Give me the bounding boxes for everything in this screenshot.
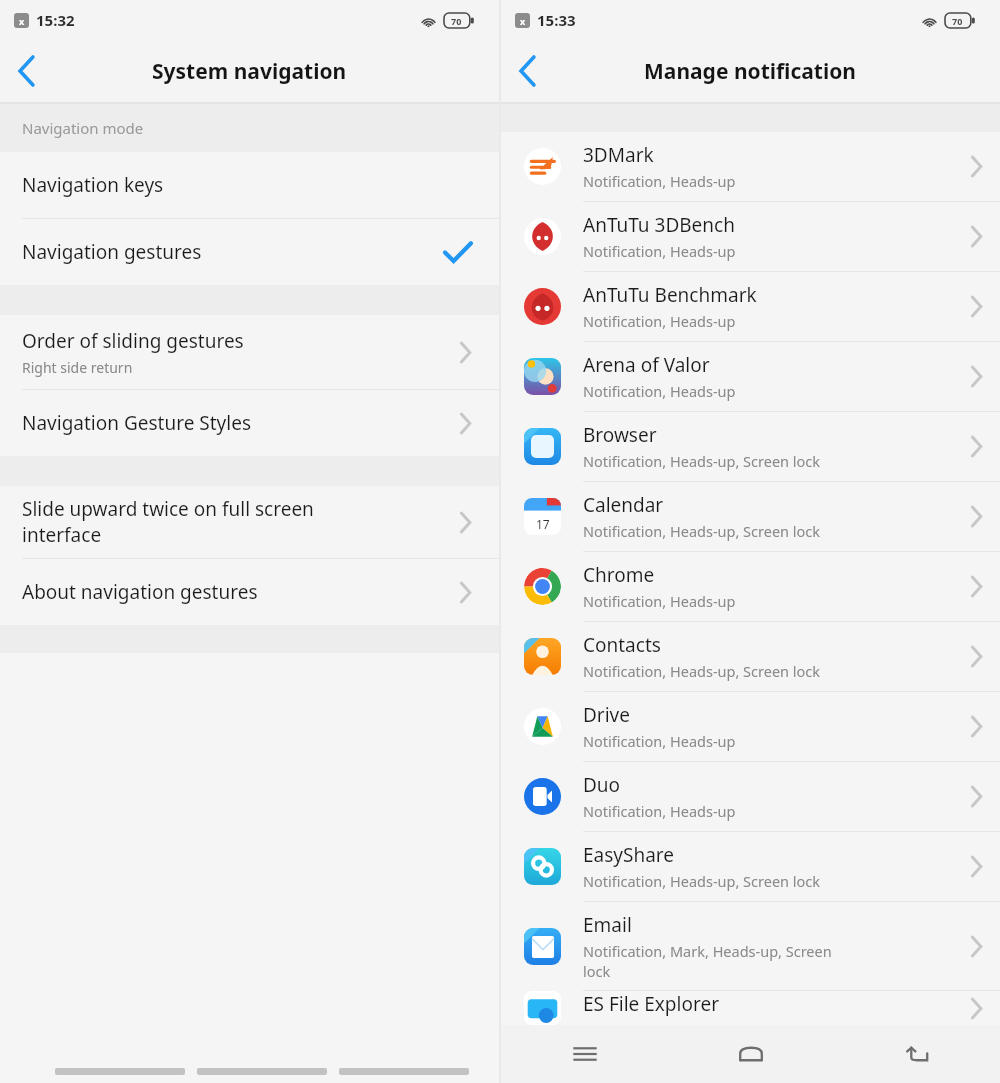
button[interactable]: ES File Explorer <box>501 991 1000 1025</box>
staticText: Notification, Mark, Heads-up, Screen loc… <box>583 941 832 981</box>
button[interactable]: Home <box>668 1025 834 1083</box>
staticText: Chrome <box>583 562 655 588</box>
staticText: Contacts <box>583 632 661 658</box>
button[interactable]: Drive <box>501 692 1000 762</box>
staticText: Navigation mode <box>22 118 144 138</box>
staticText: Notification, Heads-up <box>583 381 736 401</box>
staticText: System navigation <box>152 57 347 86</box>
button[interactable]: AnTuTu 3DBench <box>501 202 1000 272</box>
button[interactable]: Recents <box>501 1025 668 1083</box>
staticText: Notification, Heads-up, Screen lock <box>583 451 821 471</box>
staticText: Drive <box>583 702 630 728</box>
staticText: 3DMark <box>583 142 654 168</box>
staticText: 70 <box>451 15 462 27</box>
button[interactable]: Back <box>0 44 54 98</box>
staticText: Browser <box>583 422 657 448</box>
staticText: Notification, Heads-up, Screen lock <box>583 871 821 891</box>
button[interactable]: Arena of Valor <box>501 342 1000 412</box>
button[interactable]: Navigation Gesture Styles <box>0 390 499 456</box>
button[interactable]: 17 <box>501 482 1000 552</box>
staticText: Navigation keys <box>22 172 164 198</box>
staticText: Slide upward twice on full screen interf… <box>22 496 314 548</box>
staticText: 15:32 <box>36 10 75 30</box>
button[interactable]: Browser <box>501 412 1000 482</box>
staticText: x <box>520 15 526 27</box>
staticText: About navigation gestures <box>22 579 258 605</box>
button[interactable]: 3DMark <box>501 132 1000 202</box>
staticText: Notification, Heads-up <box>583 171 736 191</box>
staticText: Right side return <box>22 358 133 377</box>
button[interactable]: EasyShare <box>501 832 1000 902</box>
staticText: 70 <box>952 15 963 27</box>
staticText: Email <box>583 912 632 938</box>
staticText: Calendar <box>583 492 664 518</box>
staticText: ES File Explorer <box>583 991 719 1017</box>
button[interactable]: Slide upward twice on full screen interf… <box>0 486 499 559</box>
staticText: Notification, Heads-up, Screen lock <box>583 661 821 681</box>
staticText: Navigation Gesture Styles <box>22 410 252 436</box>
staticText: Notification, Heads-up, Screen lock <box>583 521 821 541</box>
staticText: x <box>19 15 25 27</box>
staticText: Manage notification <box>644 57 857 86</box>
button[interactable]: Email <box>501 902 1000 991</box>
staticText: Notification, Heads-up <box>583 591 736 611</box>
button[interactable]: Back <box>501 44 555 98</box>
staticText: AnTuTu Benchmark <box>583 282 757 308</box>
button[interactable]: Navigation gestures <box>0 219 499 285</box>
staticText: Duo <box>583 772 621 798</box>
button[interactable]: Navigation keys <box>0 152 499 219</box>
staticText: 15:33 <box>537 10 576 30</box>
staticText: Arena of Valor <box>583 352 710 378</box>
staticText: 17 <box>536 516 550 532</box>
staticText: Notification, Heads-up <box>583 241 736 261</box>
staticText: Notification, Heads-up <box>583 311 736 331</box>
button[interactable]: AnTuTu Benchmark <box>501 272 1000 342</box>
button[interactable]: Back <box>834 1025 1000 1083</box>
button[interactable]: Order of sliding gestures <box>0 315 499 390</box>
staticText: Navigation gestures <box>22 239 202 265</box>
button[interactable]: Duo <box>501 762 1000 832</box>
button[interactable]: About navigation gestures <box>0 559 499 625</box>
staticText: Notification, Heads-up <box>583 801 736 821</box>
button[interactable]: Chrome <box>501 552 1000 622</box>
button[interactable]: Contacts <box>501 622 1000 692</box>
staticText: Notification, Heads-up <box>583 731 736 751</box>
staticText: AnTuTu 3DBench <box>583 212 735 238</box>
staticText: EasyShare <box>583 842 675 868</box>
staticText: Order of sliding gestures <box>22 328 244 354</box>
